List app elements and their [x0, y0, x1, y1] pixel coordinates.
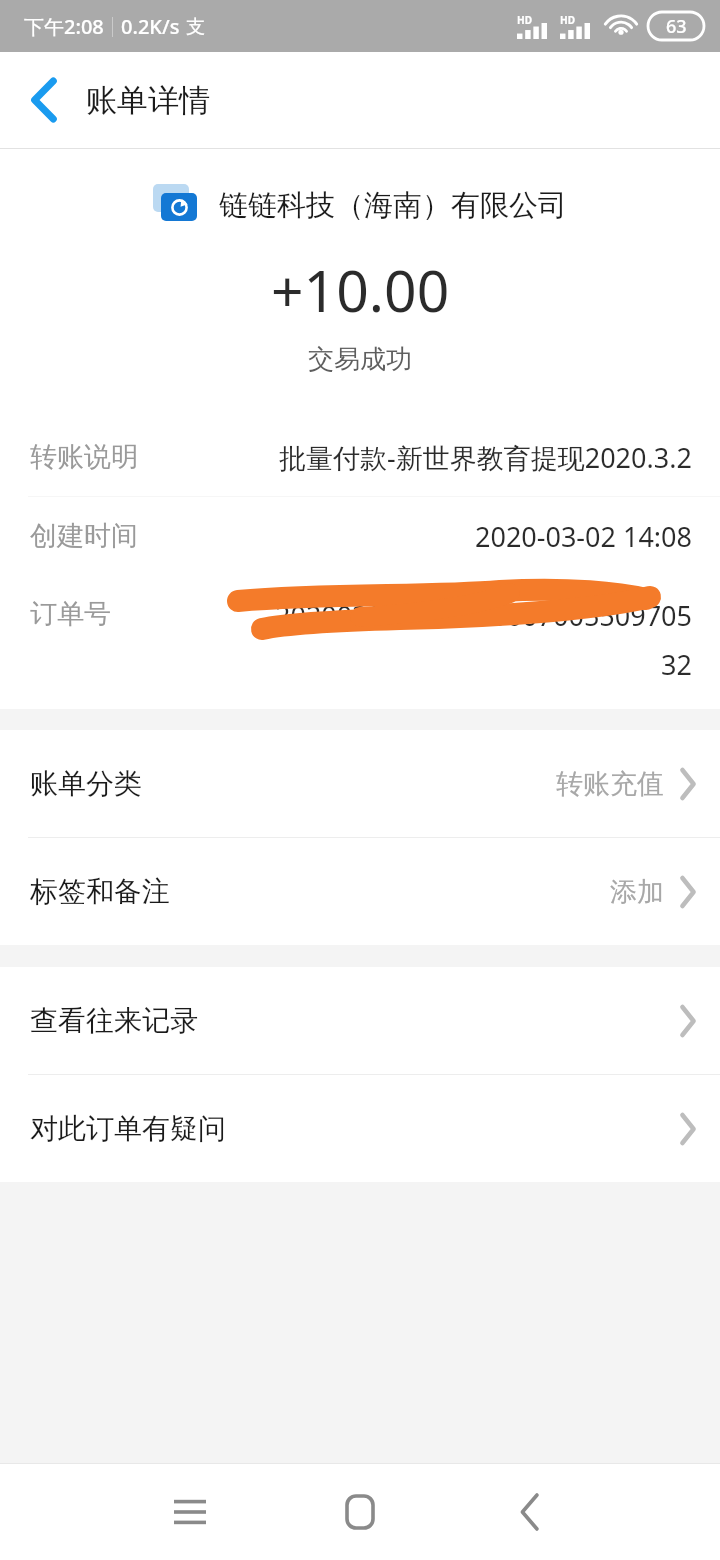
button[interactable]: Back — [14, 69, 76, 131]
staticText: 转账充值 — [556, 767, 664, 801]
button[interactable]: Recent apps — [105, 1464, 275, 1560]
button[interactable]: 查看往来记录 — [0, 967, 720, 1074]
staticText: HD — [560, 13, 575, 27]
staticText: 202003021700015007005509705 — [275, 597, 692, 634]
staticText: 批量付款-新世界教育提现2020.3.2 — [279, 439, 692, 476]
staticText: 标签和备注 — [30, 874, 170, 909]
staticText: 查看往来记录 — [30, 1003, 198, 1038]
staticText: 链链科技（海南）有限公司 — [219, 187, 567, 224]
staticText: 32 — [661, 646, 692, 683]
staticText: 账单分类 — [30, 766, 142, 801]
staticText: 2020-03-02 14:08 — [475, 518, 692, 555]
staticText: HD — [517, 13, 532, 27]
staticText: +10.00 — [271, 251, 450, 329]
staticText: 账单详情 — [86, 81, 210, 120]
staticText: 创建时间 — [30, 519, 138, 553]
staticText: 添加 — [610, 875, 664, 909]
staticText: 交易成功 — [308, 343, 412, 376]
staticText: 63 — [666, 14, 687, 39]
button[interactable]: 标签和备注 — [0, 838, 720, 945]
staticText: 转账说明 — [30, 440, 138, 474]
staticText: 0.2K/s — [121, 13, 180, 40]
button[interactable]: Back — [445, 1464, 615, 1560]
staticText: 下午2:08 — [24, 13, 104, 40]
staticText: 支 — [186, 15, 205, 39]
staticText: 订单号 — [30, 597, 111, 631]
button[interactable]: 账单分类 — [0, 730, 720, 837]
staticText: 对此订单有疑问 — [30, 1111, 226, 1146]
button[interactable]: 对此订单有疑问 — [0, 1075, 720, 1182]
button[interactable]: Home — [275, 1464, 445, 1560]
